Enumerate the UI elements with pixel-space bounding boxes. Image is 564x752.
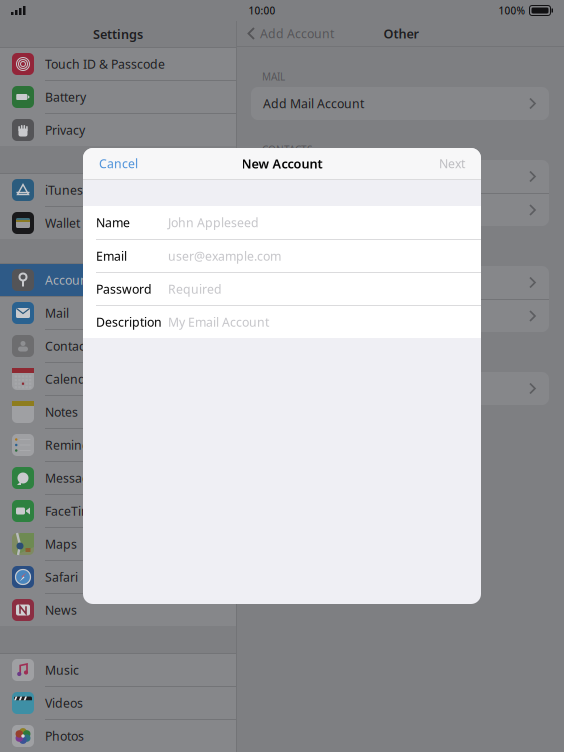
staticText: Add Mail Account [263, 95, 364, 112]
staticText: John Appleseed [168, 214, 259, 231]
staticText: FaceTime [45, 503, 99, 519]
staticText: CONTACTS [262, 143, 312, 156]
button[interactable]: Music [0, 653, 236, 686]
button[interactable]: Notes [0, 395, 236, 428]
staticText: Name [96, 214, 130, 231]
staticText: Calendar [45, 371, 98, 387]
button[interactable]: Add Mail Account [251, 87, 549, 120]
button[interactable]: iTunes & App Store [0, 173, 236, 206]
button[interactable]: Safari [0, 560, 236, 593]
button[interactable]: Mail [0, 296, 236, 329]
staticText: Reminders [45, 437, 108, 453]
button[interactable]: Videos [0, 686, 236, 719]
button[interactable]: Accounts & Passwords [0, 263, 236, 296]
button[interactable]: Wallet & Apple Pay [0, 206, 236, 239]
staticText: My Email Account [168, 314, 269, 330]
staticText: Music [45, 662, 79, 678]
staticText: MAIL [262, 70, 285, 83]
button[interactable]: Add Account [237, 25, 334, 42]
staticText: 10:00 [248, 4, 275, 17]
button[interactable]: Name [83, 206, 481, 239]
button[interactable] [251, 160, 549, 193]
button[interactable]: Maps [0, 527, 236, 560]
staticText: Touch ID & Passcode [45, 56, 165, 72]
staticText: Accounts & Passwords [45, 272, 175, 288]
staticText: Other [383, 25, 418, 42]
staticText: Contacts [45, 338, 95, 354]
staticText: Cancel [99, 155, 138, 172]
staticText: Required [168, 281, 222, 297]
staticText: Privacy [45, 122, 85, 138]
staticText: 100% [498, 4, 525, 17]
staticText: Safari [45, 569, 78, 585]
staticText: Description [96, 314, 162, 330]
staticText: New Account [241, 155, 322, 172]
button[interactable]: Password [83, 272, 481, 305]
button[interactable]: Contacts [0, 329, 236, 362]
staticText: Maps [45, 536, 77, 552]
staticText: Videos [45, 695, 83, 711]
button[interactable]: Calendar [0, 362, 236, 395]
staticText: Settings [93, 25, 143, 43]
staticText: user@example.com [168, 248, 281, 264]
button[interactable]: Messages [0, 461, 236, 494]
button[interactable]: News [0, 593, 236, 626]
staticText: iTunes & App Store [45, 182, 155, 198]
staticText: Next [439, 155, 465, 172]
button[interactable]: Cancel [83, 147, 154, 180]
button[interactable]: Privacy [0, 113, 236, 146]
button[interactable]: Battery [0, 80, 236, 113]
button[interactable]: Next [423, 147, 481, 180]
staticText: Photos [45, 728, 84, 744]
staticText: Wallet & Apple Pay [45, 215, 152, 231]
button[interactable] [251, 266, 549, 299]
button[interactable]: Reminders [0, 428, 236, 461]
staticText: Notes [45, 404, 78, 420]
staticText: Password [96, 281, 152, 297]
staticText: Messages [45, 470, 103, 486]
staticText: CALENDARS [262, 249, 317, 262]
staticText: Add Account [260, 25, 334, 42]
staticText: Battery [45, 89, 86, 105]
button[interactable]: Touch ID & Passcode [0, 47, 236, 80]
button[interactable]: FaceTime [0, 494, 236, 527]
button[interactable]: Description [83, 305, 481, 338]
button[interactable]: Email [83, 239, 481, 272]
button[interactable] [251, 299, 549, 332]
staticText: Mail [45, 305, 69, 321]
staticText: News [45, 602, 77, 618]
staticText: Email [96, 248, 127, 264]
button[interactable] [251, 372, 549, 405]
button[interactable]: Photos [0, 719, 236, 752]
button[interactable] [251, 193, 549, 226]
